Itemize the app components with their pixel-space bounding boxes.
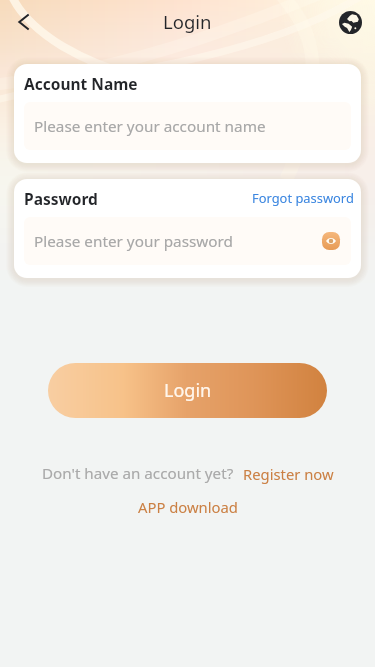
staticText: APP download bbox=[138, 497, 238, 517]
button[interactable]: Forgot password bbox=[252, 189, 354, 207]
staticText: Don't have an account yet? bbox=[42, 463, 234, 484]
button[interactable]: Login bbox=[48, 363, 327, 418]
staticText: Forgot password bbox=[252, 189, 354, 207]
staticText: Login bbox=[163, 9, 212, 34]
staticText: Please enter your account name bbox=[34, 116, 266, 137]
staticText: Login bbox=[164, 378, 212, 403]
button[interactable]: Register now bbox=[243, 464, 334, 484]
button[interactable]: Language bbox=[336, 8, 364, 36]
staticText: Register now bbox=[243, 464, 334, 484]
button[interactable]: APP download bbox=[138, 497, 238, 517]
button[interactable]: Show password bbox=[318, 228, 344, 254]
staticText: Password bbox=[24, 188, 98, 209]
staticText: Please enter your password bbox=[34, 231, 234, 252]
staticText: Account Name bbox=[24, 73, 138, 94]
button[interactable]: Back bbox=[6, 4, 42, 40]
